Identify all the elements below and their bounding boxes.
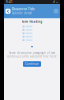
staticText: Document Title [12, 7, 35, 11]
staticText: ıl ⌁ [53, 0, 58, 4]
staticText: Subtitle detail [12, 11, 32, 15]
staticText: continues onto a second line here [7, 55, 57, 58]
staticText: 9:41 [6, 0, 13, 4]
button[interactable]: Continue [23, 61, 41, 67]
staticText: Some descriptive paragraph of text [9, 51, 55, 55]
staticText: Continue [25, 62, 39, 66]
staticText: Form Heading [21, 20, 42, 23]
button[interactable]: Account [53, 9, 58, 14]
button[interactable]: Back [5, 9, 10, 14]
